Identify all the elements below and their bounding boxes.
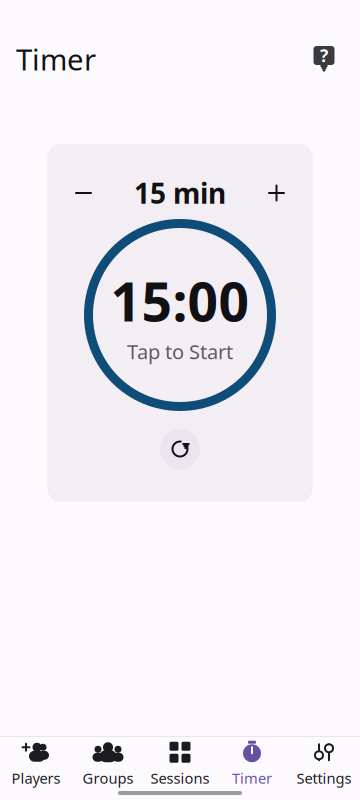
staticText: Settings <box>296 768 351 788</box>
staticText: Timer <box>16 39 96 78</box>
button[interactable]: Sessions <box>144 738 216 790</box>
staticText: ? <box>320 44 328 67</box>
button[interactable]: Decrease duration <box>61 171 105 215</box>
button[interactable]: Groups <box>72 738 144 790</box>
staticText: Players <box>11 768 60 788</box>
button[interactable]: Increase duration <box>254 171 298 215</box>
staticText: Sessions <box>150 768 209 788</box>
button[interactable]: Timer <box>216 738 288 790</box>
button[interactable]: Players <box>0 738 72 790</box>
staticText: Timer <box>232 768 272 788</box>
button[interactable]: Settings <box>288 738 360 790</box>
staticText: Groups <box>82 768 133 788</box>
staticText: 15 min <box>134 174 226 212</box>
staticText: 15:00 <box>110 265 249 336</box>
button[interactable]: 15:00 <box>80 215 280 415</box>
button[interactable]: Help <box>304 39 344 79</box>
button[interactable]: Reset timer <box>158 427 202 471</box>
staticText: Tap to Start <box>127 338 233 365</box>
